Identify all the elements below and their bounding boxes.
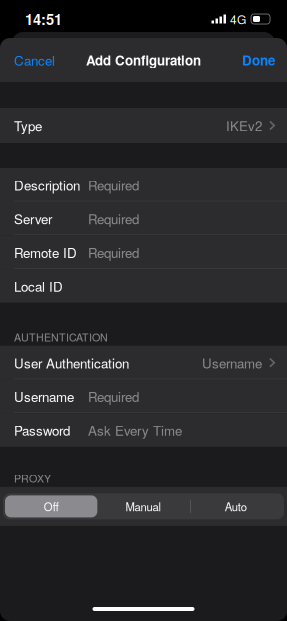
staticText: PROXY	[14, 470, 51, 486]
button[interactable]: Off	[5, 495, 97, 517]
button[interactable]: Username	[0, 379, 287, 413]
button[interactable]: Description	[0, 168, 287, 202]
staticText: Username	[202, 353, 262, 372]
button[interactable]: Server	[0, 202, 287, 235]
staticText: AUTHENTICATION	[14, 329, 108, 344]
staticText: 4G	[230, 10, 246, 28]
staticText: Required	[88, 387, 139, 406]
button[interactable]: Password	[0, 413, 287, 447]
staticText: Type	[14, 116, 42, 135]
staticText: IKEv2	[226, 116, 262, 135]
staticText: Description	[14, 175, 80, 194]
button[interactable]: Remote ID	[0, 235, 287, 269]
button[interactable]: Manual	[97, 495, 190, 517]
button[interactable]: Type	[0, 108, 287, 143]
staticText: 14:51	[25, 8, 62, 29]
staticText: Ask Every Time	[88, 420, 182, 440]
staticText: Required	[88, 243, 139, 262]
button[interactable]: Done	[228, 38, 287, 82]
staticText: User Authentication	[14, 353, 129, 372]
staticText: Add Configuration	[86, 50, 201, 70]
staticText: Auto	[225, 498, 247, 514]
button[interactable]: Local ID	[0, 269, 287, 303]
staticText: Username	[14, 387, 74, 406]
staticText: Cancel	[14, 50, 55, 70]
staticText: Done	[242, 50, 275, 70]
staticText: Remote ID	[14, 243, 77, 262]
staticText: Required	[88, 175, 139, 194]
staticText: Required	[88, 209, 139, 228]
staticText: Server	[14, 209, 52, 228]
staticText: Password	[14, 420, 70, 440]
staticText: Local ID	[14, 276, 63, 295]
button[interactable]: Auto	[190, 495, 282, 517]
staticText: Manual	[125, 498, 161, 514]
button[interactable]: Cancel	[0, 38, 69, 82]
button[interactable]: User Authentication	[0, 346, 287, 379]
staticText: Off	[44, 498, 59, 514]
